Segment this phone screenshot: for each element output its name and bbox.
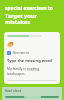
button[interactable]: Read aloud (5, 89, 22, 93)
staticText: Type the missing word (7, 58, 52, 63)
staticText: Target your mistakes (5, 12, 59, 26)
staticText: special exercises to (5, 5, 53, 12)
staticText: reading (27, 66, 40, 71)
staticText: landscapes. (7, 71, 26, 76)
staticText: CONTINUE (24, 96, 41, 98)
staticText: New exercise (13, 51, 30, 55)
staticText: My family is (7, 66, 27, 71)
button[interactable]: New exercise (4, 32, 60, 84)
button[interactable]: CONTINUE (5, 96, 59, 98)
